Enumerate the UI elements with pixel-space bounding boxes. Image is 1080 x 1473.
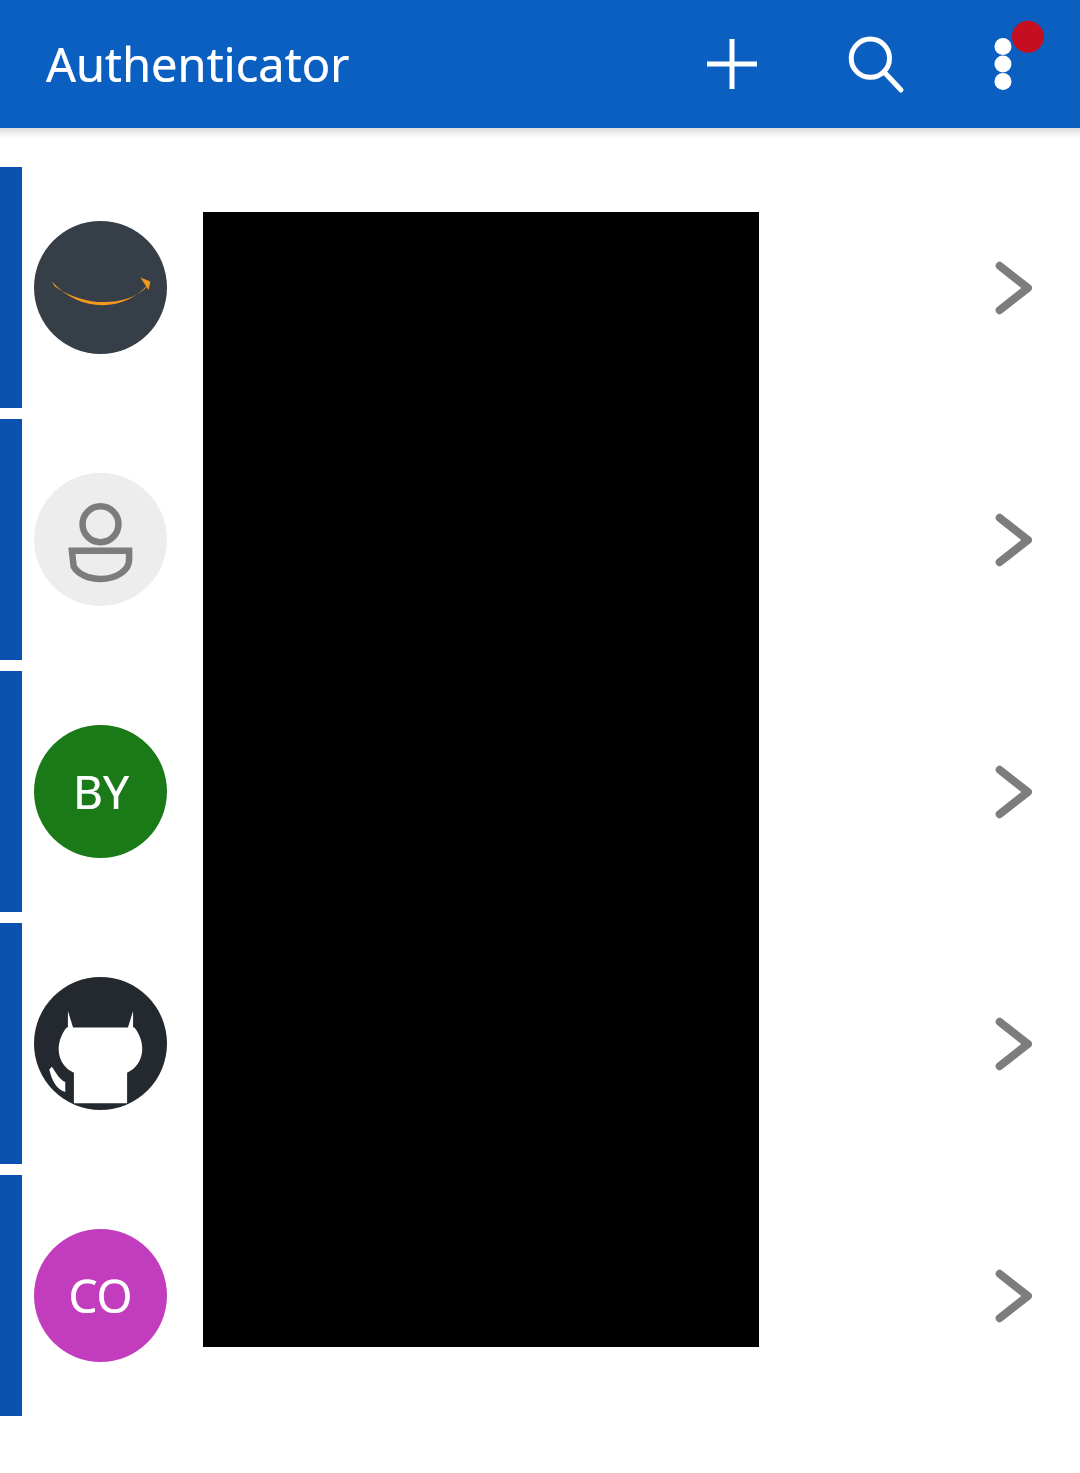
staticText: BY (73, 760, 129, 823)
button[interactable]: Search (821, 10, 929, 118)
button[interactable]: BY (0, 671, 1080, 912)
button[interactable] (0, 419, 1080, 660)
button[interactable]: More options (956, 10, 1064, 118)
staticText: Authenticator (46, 32, 350, 96)
button[interactable]: CO (0, 1175, 1080, 1416)
staticText: CO (68, 1264, 133, 1327)
button[interactable]: Add account (678, 10, 786, 118)
button[interactable] (0, 167, 1080, 408)
button[interactable] (0, 923, 1080, 1164)
